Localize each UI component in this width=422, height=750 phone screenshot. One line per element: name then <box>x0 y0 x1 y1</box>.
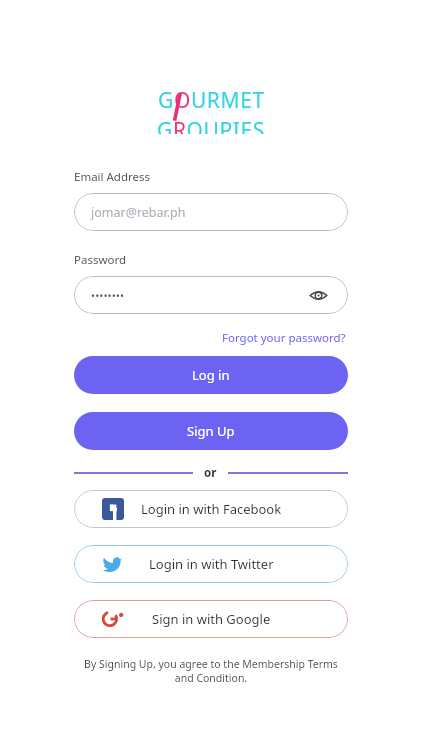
staticText: Sign in with Google <box>152 610 271 628</box>
staticText: Forgot your password? <box>222 330 346 346</box>
staticText: GROUPIES <box>157 116 265 134</box>
staticText: or <box>204 465 217 481</box>
staticText: Email Address <box>74 169 151 185</box>
staticText: By Signing Up, you agree to the Membersh… <box>78 657 344 685</box>
button[interactable]: Sign in with Google <box>74 600 348 638</box>
staticText: Sign Up <box>187 422 235 440</box>
staticText: •••••••• <box>91 288 125 303</box>
staticText: jomar@rebar.ph <box>91 204 186 221</box>
button[interactable]: Log in <box>74 356 348 394</box>
staticText: Login in with Twitter <box>149 555 274 573</box>
button[interactable]: Show password <box>305 282 331 308</box>
staticText: Log in <box>192 366 230 384</box>
button[interactable]: jomar@rebar.ph <box>74 193 348 231</box>
button[interactable]: Login in with Facebook <box>74 490 348 528</box>
button[interactable]: Sign Up <box>74 412 348 450</box>
button[interactable]: Login in with Twitter <box>74 545 348 583</box>
staticText: Login in with Facebook <box>141 500 282 518</box>
staticText: GOURMET <box>158 86 265 115</box>
button[interactable]: Forgot your password? <box>220 328 348 348</box>
button[interactable]: •••••••• <box>74 276 348 314</box>
staticText: Password <box>74 252 127 268</box>
